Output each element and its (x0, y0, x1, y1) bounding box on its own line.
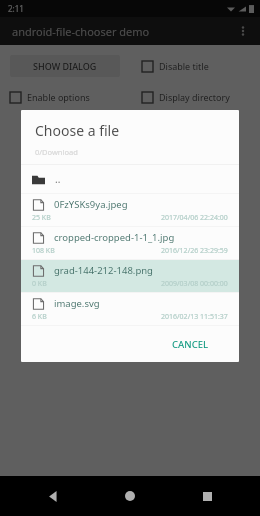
staticText: CANCEL (172, 338, 209, 351)
button[interactable]: Home (117, 483, 143, 509)
button[interactable]: .. (21, 165, 239, 193)
button[interactable]: cropped-cropped-1-1_1.jpg (21, 227, 239, 259)
staticText: 0/Download (35, 147, 78, 157)
staticText: 108 KB (32, 246, 55, 256)
staticText: grad-144-212-148.png (54, 264, 153, 277)
staticText: Disable title (159, 60, 209, 72)
staticText: 2016/12/26 23:29:59 (161, 246, 228, 256)
staticText: image.svg (54, 297, 100, 310)
staticText: 6 KB (32, 312, 47, 322)
button[interactable]: Display directory (142, 91, 230, 103)
button[interactable]: SHOW DIALOG (10, 55, 120, 77)
staticText: 2017/04/06 22:24:00 (161, 213, 228, 223)
staticText: 0FzYSKs9ya.jpeg (54, 198, 128, 211)
button[interactable]: Disable title (142, 60, 209, 72)
staticText: Enable options (27, 91, 90, 103)
button[interactable]: grad-144-212-148.png (21, 260, 239, 292)
button[interactable]: 0FzYSKs9ya.jpeg (21, 194, 239, 226)
button[interactable]: CANCEL (164, 333, 217, 356)
staticText: 2009/03/08 00:00:00 (161, 279, 228, 289)
staticText: cropped-cropped-1-1_1.jpg (54, 231, 175, 244)
staticText: Choose a file (35, 121, 120, 140)
button[interactable]: Enable options (10, 91, 90, 103)
button[interactable]: Recents (194, 483, 220, 509)
button[interactable]: image.svg (21, 293, 239, 325)
staticText: 2016/02/13 11:51:37 (161, 312, 228, 322)
button[interactable]: More options (230, 18, 256, 44)
staticText: .. (55, 172, 61, 186)
staticText: 25 KB (32, 213, 51, 223)
staticText: 2:11 (8, 3, 24, 14)
button[interactable]: Back (40, 483, 66, 509)
staticText: SHOW DIALOG (33, 60, 97, 72)
staticText: 0 KB (32, 279, 47, 289)
staticText: Display directory (159, 91, 230, 103)
staticText: android-file-chooser demo (12, 24, 150, 39)
